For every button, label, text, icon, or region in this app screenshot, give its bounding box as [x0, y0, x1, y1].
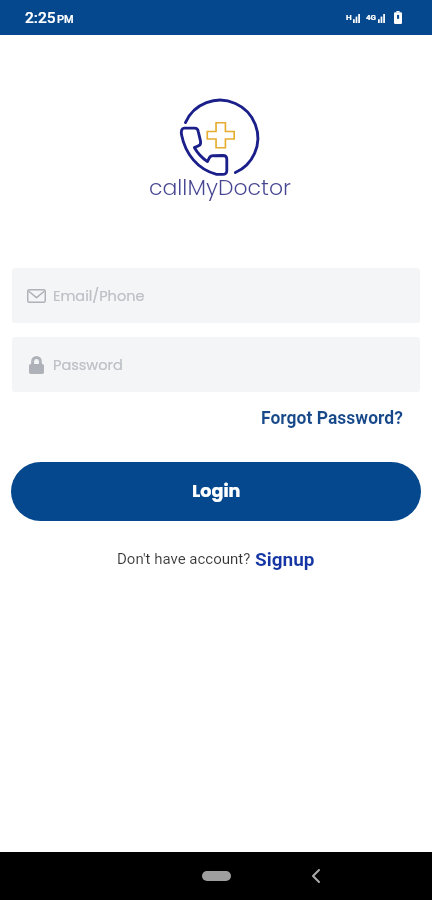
button[interactable]: Back	[300, 860, 332, 892]
staticText: Email/Phone	[53, 286, 145, 306]
staticText: H	[346, 13, 352, 22]
staticText: 2:25	[25, 9, 56, 27]
staticText: Password	[53, 355, 123, 375]
staticText: 4G	[366, 13, 377, 22]
staticText: PM	[57, 13, 74, 26]
button[interactable]: Signup	[255, 548, 315, 570]
staticText: callMyDoctor	[149, 172, 291, 203]
button[interactable]: Password	[12, 337, 420, 392]
staticText: Login	[192, 479, 241, 504]
button[interactable]: Email/Phone	[12, 268, 420, 323]
staticText: Signup	[255, 548, 315, 570]
button[interactable]: Login	[11, 462, 421, 521]
button[interactable]: Forgot Password?	[257, 405, 407, 432]
staticText: Forgot Password?	[261, 408, 403, 429]
staticText: Don't have account?	[117, 550, 251, 568]
button[interactable]: Home	[190, 859, 243, 893]
